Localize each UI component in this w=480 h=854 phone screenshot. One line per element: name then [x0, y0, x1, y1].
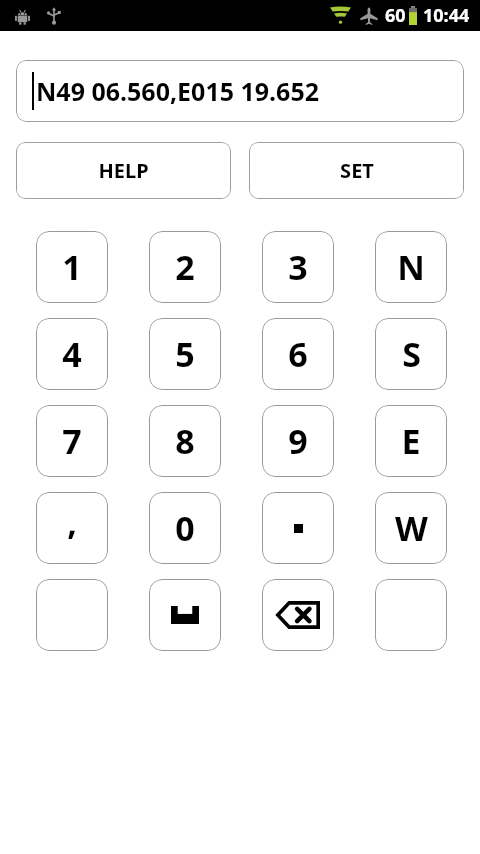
button[interactable]: N: [375, 231, 447, 303]
button[interactable]: Backspace: [262, 579, 334, 651]
button[interactable]: S: [375, 318, 447, 390]
staticText: 2: [175, 244, 195, 290]
button[interactable]: 3: [262, 231, 334, 303]
staticText: N49 06.560,E015 19.652: [36, 74, 320, 108]
staticText: 7: [62, 418, 82, 464]
button[interactable]: 4: [36, 318, 108, 390]
button[interactable]: 2: [149, 231, 221, 303]
button[interactable]: Blank key: [36, 579, 108, 651]
staticText: HELP: [98, 157, 149, 184]
staticText: 1: [62, 244, 82, 290]
button[interactable]: 7: [36, 405, 108, 477]
staticText: 4: [62, 331, 82, 377]
button[interactable]: ,: [36, 492, 108, 564]
button[interactable]: 9: [262, 405, 334, 477]
button[interactable]: SET: [249, 142, 464, 199]
button[interactable]: W: [375, 492, 447, 564]
staticText: 0: [175, 505, 195, 551]
button[interactable]: N49 06.560,E015 19.652: [16, 60, 464, 122]
button[interactable]: 5: [149, 318, 221, 390]
button[interactable]: 0: [149, 492, 221, 564]
button[interactable]: 1: [36, 231, 108, 303]
button[interactable]: Space: [149, 579, 221, 651]
staticText: 9: [288, 418, 308, 464]
staticText: 10:44: [423, 3, 470, 28]
staticText: E: [401, 418, 421, 464]
button[interactable]: E: [375, 405, 447, 477]
staticText: 3: [288, 244, 308, 290]
staticText: SET: [340, 157, 374, 184]
button[interactable]: 6: [262, 318, 334, 390]
staticText: S: [402, 331, 421, 377]
staticText: 6: [288, 331, 308, 377]
button[interactable]: Blank key: [375, 579, 447, 651]
staticText: W: [395, 505, 428, 551]
staticText: 60: [385, 3, 406, 28]
button[interactable]: 8: [149, 405, 221, 477]
button[interactable]: [262, 492, 334, 564]
staticText: ,: [67, 499, 77, 545]
staticText: 8: [175, 418, 195, 464]
staticText: N: [397, 244, 425, 290]
button[interactable]: HELP: [16, 142, 231, 199]
staticText: 5: [175, 331, 195, 377]
